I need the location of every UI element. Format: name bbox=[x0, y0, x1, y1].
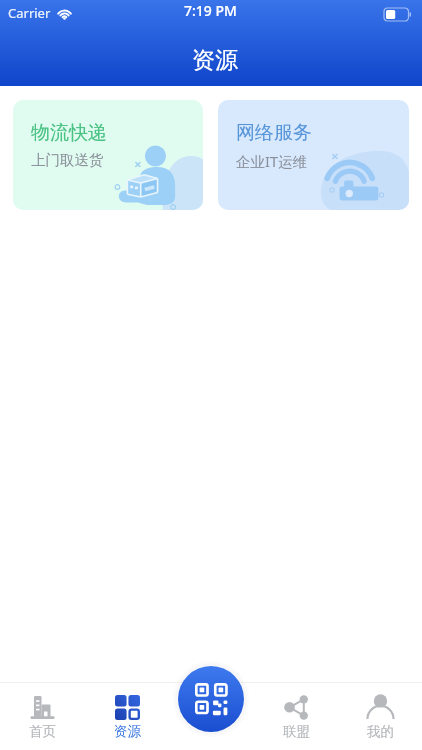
staticText: 资源 bbox=[114, 723, 141, 740]
button[interactable]: 联盟 bbox=[254, 682, 338, 750]
button[interactable]: 网络服务 bbox=[218, 100, 409, 210]
staticText: 7:19 PM bbox=[184, 1, 237, 20]
staticText: 企业IT运维 bbox=[236, 151, 307, 171]
button[interactable]: 资源 bbox=[85, 682, 170, 750]
staticText: 我的 bbox=[367, 723, 394, 740]
staticText: Carrier bbox=[8, 4, 51, 22]
staticText: 资源 bbox=[192, 46, 238, 75]
button[interactable]: 扫一扫 bbox=[178, 666, 244, 732]
staticText: 上门取送货 bbox=[31, 151, 104, 169]
button[interactable]: 物流快递 bbox=[13, 100, 203, 210]
staticText: 物流快递 bbox=[31, 121, 107, 145]
staticText: 首页 bbox=[29, 723, 56, 740]
button[interactable]: 首页 bbox=[0, 682, 85, 750]
staticText: 网络服务 bbox=[236, 121, 312, 145]
staticText: 联盟 bbox=[283, 723, 310, 740]
button[interactable]: 我的 bbox=[338, 682, 422, 750]
